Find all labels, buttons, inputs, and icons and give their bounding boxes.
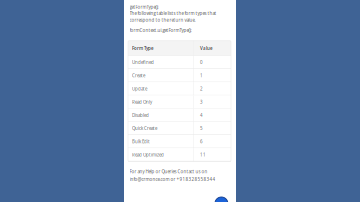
staticText: 11	[200, 152, 206, 158]
staticText: correspond to the return value.	[130, 17, 196, 23]
staticText: The following table lists the form types…	[130, 10, 217, 16]
staticText: Read Only	[132, 99, 152, 105]
staticText: getFormType();	[130, 4, 159, 10]
staticText: Read Optimized	[132, 152, 164, 158]
staticText: 3	[200, 99, 203, 105]
staticText: 6	[200, 139, 203, 145]
staticText: 5	[200, 125, 203, 131]
staticText: 4	[200, 112, 203, 118]
staticText: Form Type	[132, 45, 154, 51]
staticText: Bulk Edit	[132, 139, 150, 145]
staticText: Disabled	[132, 112, 149, 118]
staticText: Create	[132, 73, 145, 79]
staticText: 0	[200, 59, 203, 65]
staticText: Value	[200, 45, 213, 51]
staticText: Update	[132, 86, 147, 92]
staticText: Quick Create	[132, 125, 157, 131]
staticText: 2	[200, 86, 203, 92]
button[interactable]: Chat	[124, 0, 236, 202]
staticText: Undefined	[132, 59, 154, 65]
staticText: info@crmonce.com or +918328558344	[130, 176, 216, 182]
staticText: 1	[200, 73, 203, 79]
staticText: For any Help or Queries Contact us on	[130, 169, 208, 175]
staticText: formContext.ui.getFormType();	[130, 27, 192, 33]
